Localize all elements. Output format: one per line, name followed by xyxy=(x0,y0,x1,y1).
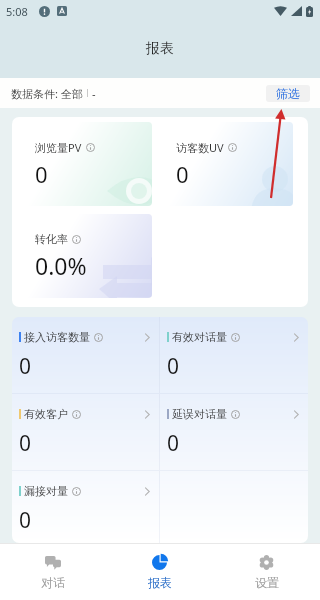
button[interactable]: 浏览量PV xyxy=(16,122,152,206)
staticText: 有效客户 xyxy=(24,407,68,421)
staticText: 0 xyxy=(176,159,189,189)
staticText: 报表 xyxy=(148,575,172,590)
staticText: 设置 xyxy=(255,575,279,590)
staticText: 延误对话量 xyxy=(172,407,227,421)
button[interactable]: Reports xyxy=(106,544,213,600)
button[interactable]: 漏接对量 xyxy=(12,471,159,543)
staticText: 接入访客数量 xyxy=(24,330,90,344)
staticText: 0 xyxy=(19,429,32,458)
staticText: 0 xyxy=(167,429,180,458)
staticText: - xyxy=(92,86,96,101)
button[interactable]: 接入访客数量 xyxy=(12,317,159,393)
staticText: 数据条件: 全部 xyxy=(11,86,83,101)
staticText: 筛选 xyxy=(276,86,300,101)
staticText: 转化率 xyxy=(35,232,68,246)
staticText: 0 xyxy=(19,352,32,381)
button[interactable]: 访客数UV xyxy=(157,122,293,206)
button[interactable]: 转化率 xyxy=(16,214,152,298)
staticText: 漏接对量 xyxy=(24,484,68,498)
staticText: 5:08 xyxy=(6,4,28,19)
button[interactable]: 有效对话量 xyxy=(160,317,308,393)
button[interactable]: 延误对话量 xyxy=(160,394,308,470)
staticText: 浏览量PV xyxy=(35,140,82,155)
staticText: 访客数UV xyxy=(176,140,224,155)
staticText: 0 xyxy=(35,159,48,189)
staticText: 对话 xyxy=(41,575,65,590)
staticText: 报表 xyxy=(146,40,174,58)
staticText: 0 xyxy=(19,506,32,535)
staticText: 有效对话量 xyxy=(172,330,227,344)
staticText: 0.0% xyxy=(35,250,87,281)
button[interactable]: 筛选 xyxy=(266,85,310,102)
button[interactable]: Settings xyxy=(213,544,320,600)
button[interactable]: Conversations xyxy=(0,544,106,600)
staticText: 0 xyxy=(167,352,180,381)
button[interactable]: 有效客户 xyxy=(12,394,159,470)
